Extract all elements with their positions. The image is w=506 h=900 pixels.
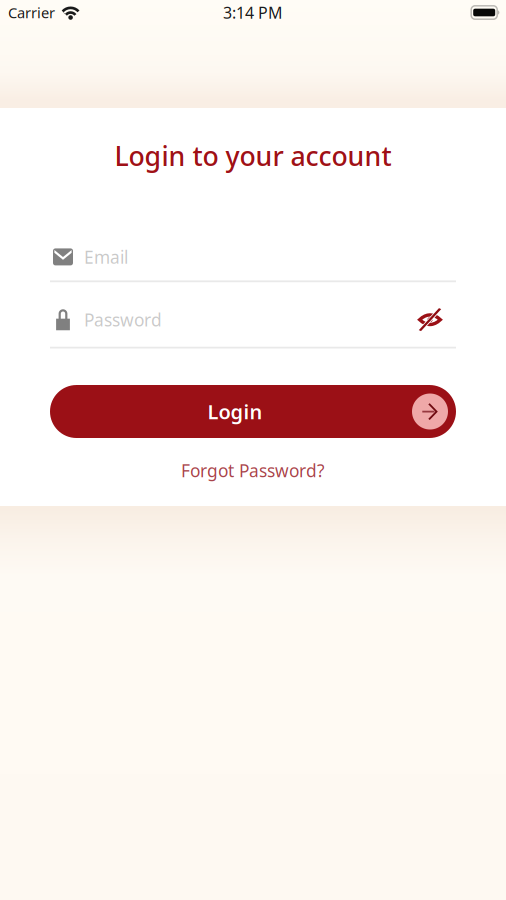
staticText: Forgot Password? — [181, 459, 325, 482]
button[interactable]: Forgot Password? — [173, 455, 333, 486]
staticText: Email — [84, 245, 128, 268]
button[interactable]: Show password — [417, 307, 456, 333]
staticText: 3:14 PM — [223, 2, 283, 23]
staticText: Carrier — [8, 3, 55, 22]
staticText: Login to your account — [114, 138, 391, 173]
button[interactable]: Login — [50, 385, 456, 438]
staticText: Password — [84, 308, 162, 331]
staticText: Login — [207, 398, 262, 425]
